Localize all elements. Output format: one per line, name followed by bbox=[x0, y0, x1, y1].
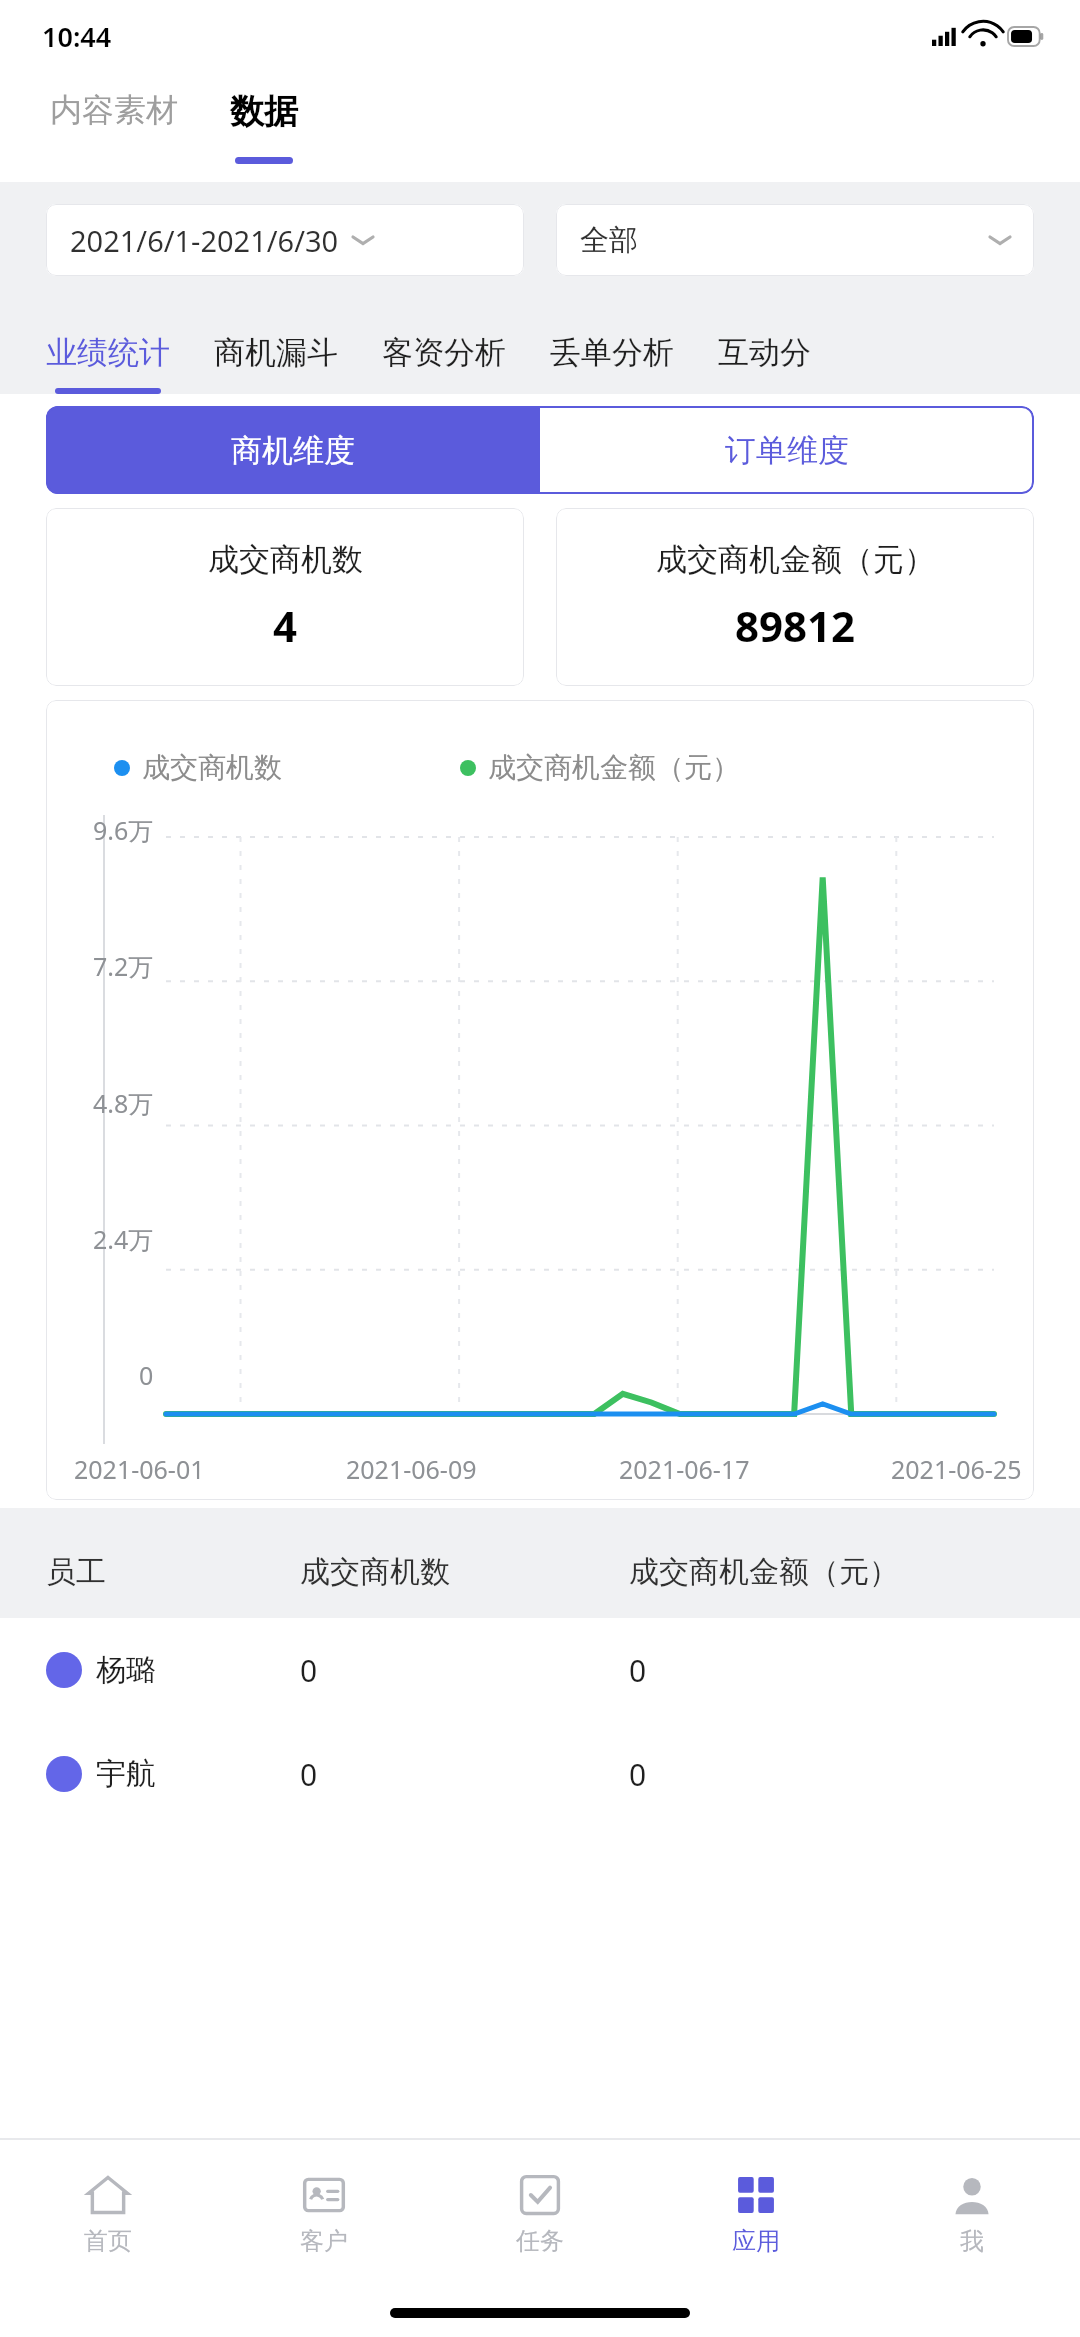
staticText: 内容素材 bbox=[50, 90, 178, 130]
button[interactable]: 互动分 bbox=[718, 333, 811, 394]
staticText: 客资分析 bbox=[382, 333, 506, 372]
button[interactable]: 首页 bbox=[0, 2139, 216, 2289]
staticText: 2021-06-01 bbox=[74, 1452, 205, 1486]
staticText: 任务 bbox=[516, 2226, 564, 2256]
staticText: 0 bbox=[629, 1754, 1034, 1795]
button[interactable]: 丢单分析 bbox=[550, 333, 674, 394]
staticText: 89812 bbox=[735, 597, 856, 654]
staticText: 杨璐 bbox=[96, 1651, 156, 1689]
staticText: 商机维度 bbox=[231, 431, 355, 470]
staticText: 成交商机数 bbox=[208, 540, 363, 579]
staticText: 0 bbox=[300, 1754, 629, 1795]
button[interactable]: 全部 bbox=[556, 204, 1034, 276]
button[interactable]: 客户 bbox=[216, 2139, 432, 2289]
button[interactable]: 数据 bbox=[226, 84, 302, 164]
staticText: 成交商机金额（元） bbox=[629, 1553, 1034, 1591]
staticText: 0 bbox=[139, 1358, 154, 1392]
button[interactable]: 杨璐 bbox=[0, 1618, 1080, 1722]
staticText: 成交商机金额（元） bbox=[488, 750, 740, 785]
staticText: 4 bbox=[273, 597, 298, 654]
staticText: 应用 bbox=[732, 2226, 780, 2256]
button[interactable]: 成交商机数 bbox=[46, 508, 524, 686]
button[interactable]: 客资分析 bbox=[382, 333, 506, 394]
staticText: 4.8万 bbox=[93, 1086, 154, 1120]
button[interactable]: 我 bbox=[864, 2139, 1080, 2289]
staticText: 2021-06-25 bbox=[891, 1452, 1022, 1486]
staticText: 订单维度 bbox=[725, 431, 849, 470]
staticText: 宇航 bbox=[96, 1755, 156, 1793]
staticText: 商机漏斗 bbox=[214, 333, 338, 372]
button[interactable]: 业绩统计 bbox=[46, 333, 170, 394]
staticText: 2.4万 bbox=[93, 1222, 154, 1256]
staticText: 2021/6/1-2021/6/30 bbox=[70, 221, 339, 260]
staticText: 丢单分析 bbox=[550, 333, 674, 372]
staticText: 成交商机金额（元） bbox=[656, 540, 935, 579]
staticText: 首页 bbox=[84, 2226, 132, 2256]
button[interactable]: 商机漏斗 bbox=[214, 333, 338, 394]
staticText: 互动分 bbox=[718, 333, 811, 372]
staticText: 我 bbox=[960, 2226, 984, 2256]
staticText: 0 bbox=[300, 1650, 629, 1691]
button[interactable]: 成交商机金额（元） bbox=[556, 508, 1034, 686]
button[interactable]: 商机维度 bbox=[46, 406, 540, 494]
button[interactable]: 内容素材 bbox=[46, 84, 182, 136]
staticText: 全部 bbox=[580, 222, 638, 259]
staticText: 2021-06-17 bbox=[619, 1452, 750, 1486]
staticText: 2021-06-09 bbox=[346, 1452, 477, 1486]
button[interactable]: 2021/6/1-2021/6/30 bbox=[46, 204, 524, 276]
button[interactable]: 宇航 bbox=[0, 1722, 1080, 1826]
staticText: 10:44 bbox=[42, 18, 112, 55]
button[interactable]: 应用 bbox=[648, 2139, 864, 2289]
button[interactable]: 订单维度 bbox=[540, 406, 1034, 494]
staticText: 业绩统计 bbox=[46, 333, 170, 372]
staticText: 数据 bbox=[230, 90, 298, 133]
staticText: 成交商机数 bbox=[300, 1553, 629, 1591]
button[interactable]: 任务 bbox=[432, 2139, 648, 2289]
staticText: 成交商机数 bbox=[142, 750, 282, 785]
staticText: 7.2万 bbox=[93, 949, 154, 983]
staticText: 员工 bbox=[46, 1553, 300, 1591]
staticText: 9.6万 bbox=[93, 813, 154, 847]
staticText: 0 bbox=[629, 1650, 1034, 1691]
staticText: 客户 bbox=[300, 2226, 348, 2256]
